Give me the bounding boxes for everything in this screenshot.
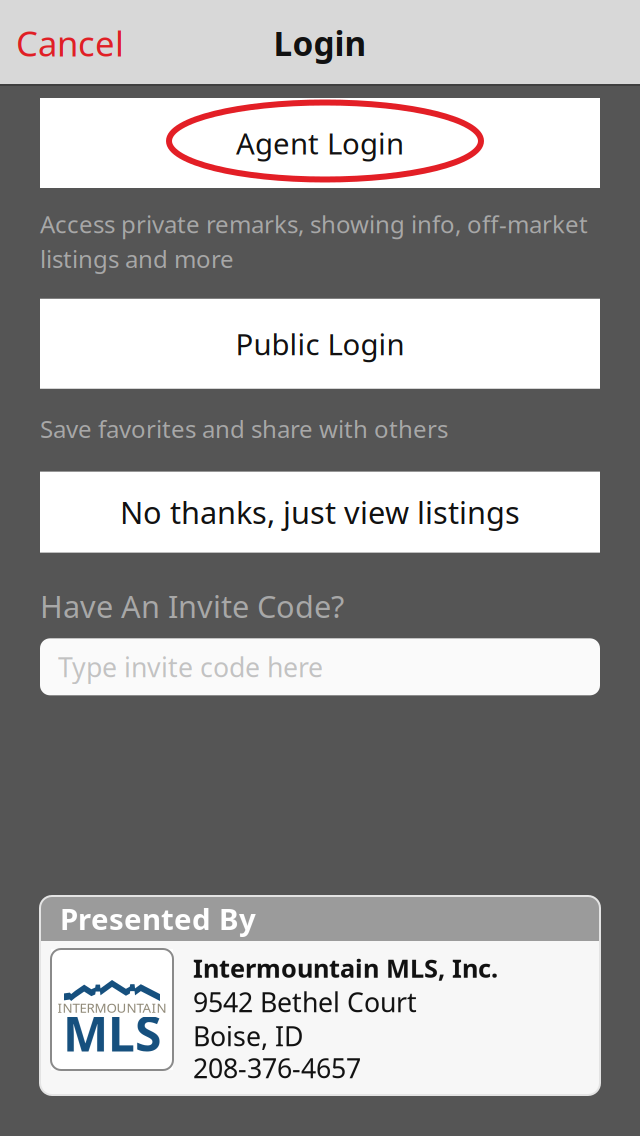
staticText: Boise, ID [193, 1018, 303, 1054]
staticText: No thanks, just view listings [120, 492, 520, 532]
staticText: MLS [63, 1001, 161, 1065]
button[interactable]: No thanks, just view listings [40, 472, 600, 553]
staticText: 9542 Bethel Court [193, 984, 417, 1020]
staticText: Agent Login [236, 123, 404, 162]
staticText: Have An Invite Code? [40, 586, 344, 626]
staticText: Cancel [16, 20, 124, 66]
staticText: Type invite code here [58, 649, 323, 684]
staticText: Access private remarks, showing info, of… [40, 208, 588, 275]
button[interactable]: Type invite code here [40, 638, 600, 695]
button[interactable]: Agent Login [40, 98, 600, 188]
staticText: Login [273, 21, 366, 65]
button[interactable]: Public Login [40, 299, 600, 389]
staticText: Public Login [235, 324, 404, 363]
button[interactable]: Cancel [0, 6, 142, 80]
staticText: Intermountain MLS, Inc. [193, 951, 498, 985]
staticText: 208-376-4657 [193, 1050, 361, 1086]
staticText: Save favorites and share with others [40, 413, 448, 445]
staticText: INTERMOUNTAIN [57, 999, 166, 1016]
staticText: Presented By [60, 899, 256, 938]
